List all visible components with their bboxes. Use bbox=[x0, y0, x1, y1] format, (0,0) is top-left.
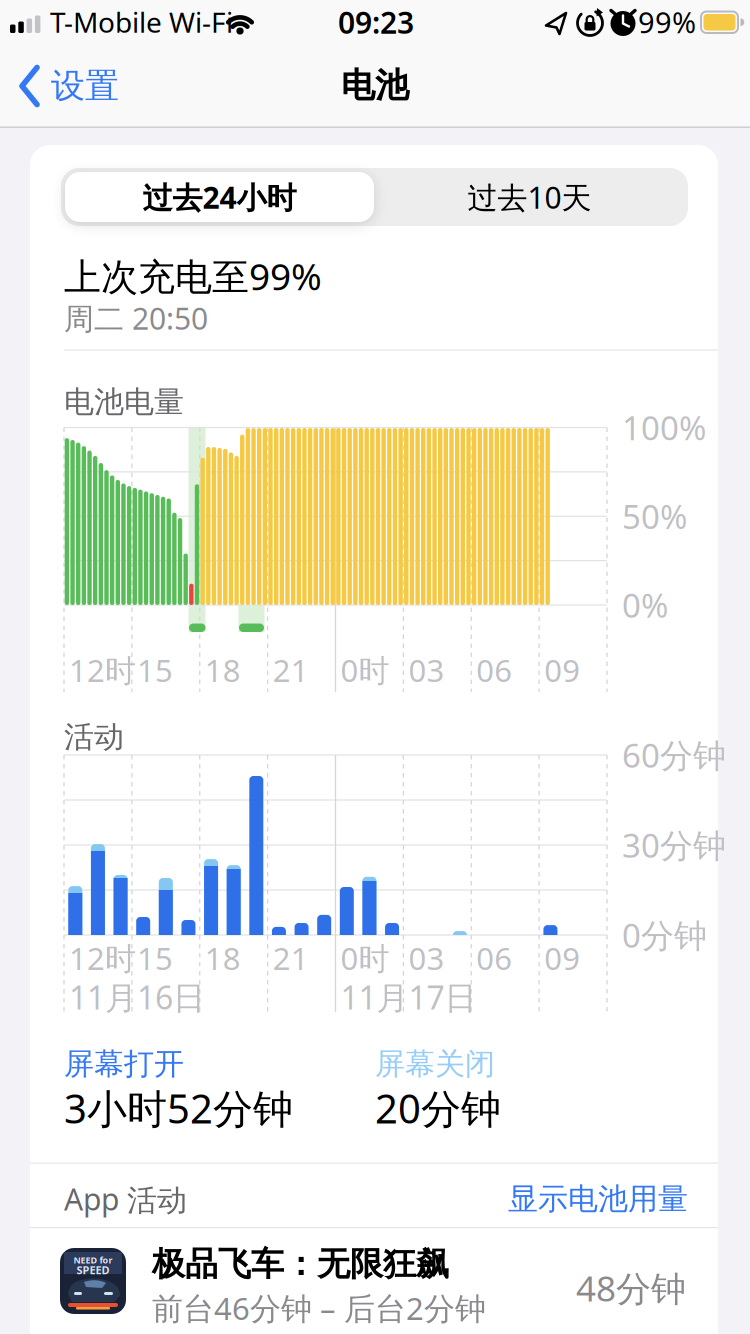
staticText: 显示电池用量 bbox=[508, 1180, 688, 1218]
staticText: 周二 20:50 bbox=[64, 298, 208, 338]
staticText: 上次充电至99% bbox=[64, 251, 322, 301]
staticText: 20分钟 bbox=[375, 1081, 501, 1135]
button[interactable]: 过去24小时 bbox=[65, 172, 374, 222]
staticText: 15 bbox=[137, 937, 173, 979]
staticText: 0% bbox=[622, 582, 668, 627]
staticText: 活动 bbox=[64, 718, 124, 756]
staticText: App 活动 bbox=[64, 1178, 187, 1219]
staticText: 11月17日 bbox=[340, 975, 476, 1019]
staticText: 18 bbox=[205, 937, 241, 979]
staticText: 电池 bbox=[341, 64, 409, 107]
staticText: 电池电量 bbox=[64, 383, 184, 421]
staticText: 48分钟 bbox=[576, 1264, 686, 1312]
staticText: 100% bbox=[622, 405, 706, 450]
staticText: 过去10天 bbox=[467, 177, 591, 217]
staticText: 0时 bbox=[340, 649, 389, 691]
staticText: 60分钟 bbox=[622, 732, 726, 777]
staticText: 09:23 bbox=[338, 2, 414, 42]
button[interactable]: 过去10天 bbox=[375, 172, 684, 222]
staticText: 09 bbox=[544, 937, 580, 979]
staticText: 极品飞车：无限狂飙 bbox=[152, 1243, 449, 1285]
staticText: 21 bbox=[273, 649, 309, 691]
staticText: NEED for bbox=[73, 1254, 112, 1266]
button[interactable]: 设置 bbox=[20, 55, 119, 117]
staticText: T-Mobile Wi-Fi bbox=[50, 3, 233, 41]
button[interactable]: 显示电池用量 bbox=[388, 1175, 688, 1223]
button[interactable]: NEED for bbox=[30, 1227, 718, 1334]
staticText: 18 bbox=[205, 649, 241, 691]
staticText: 0时 bbox=[340, 937, 389, 979]
staticText: SPEED bbox=[76, 1262, 109, 1277]
staticText: 99% bbox=[638, 2, 696, 42]
staticText: 50% bbox=[622, 494, 687, 539]
staticText: 21 bbox=[273, 937, 309, 979]
staticText: 过去24小时 bbox=[142, 177, 296, 217]
staticText: 屏幕打开 bbox=[64, 1045, 184, 1083]
staticText: 12时 bbox=[69, 937, 136, 979]
staticText: 09 bbox=[544, 649, 580, 691]
staticText: 03 bbox=[408, 649, 444, 691]
staticText: 30分钟 bbox=[622, 822, 726, 867]
staticText: 0分钟 bbox=[622, 912, 707, 957]
staticText: 03 bbox=[408, 937, 444, 979]
staticText: 3小时52分钟 bbox=[64, 1081, 293, 1135]
staticText: 11月16日 bbox=[69, 975, 205, 1019]
staticText: 屏幕关闭 bbox=[375, 1045, 495, 1083]
staticText: 15 bbox=[137, 649, 173, 691]
staticText: 06 bbox=[476, 937, 512, 979]
staticText: 前台46分钟 – 后台2分钟 bbox=[152, 1287, 486, 1329]
staticText: 12时 bbox=[69, 649, 136, 691]
staticText: 06 bbox=[476, 649, 512, 691]
staticText: 设置 bbox=[51, 65, 119, 107]
